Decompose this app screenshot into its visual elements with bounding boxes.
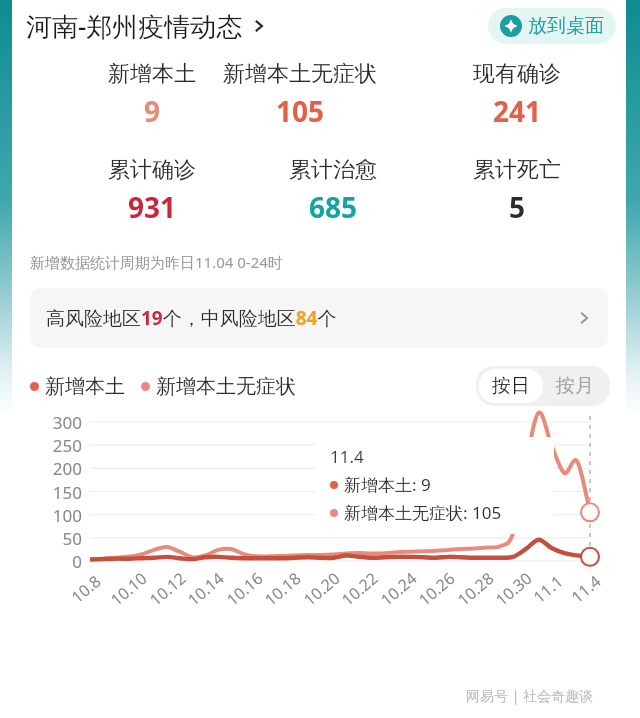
- staticText: 11.1: [529, 570, 567, 608]
- staticText: 10.20: [299, 567, 344, 611]
- staticText: 10.14: [183, 567, 228, 611]
- staticText: 0: [34, 550, 82, 573]
- staticText: 新增本土无症状: 105: [344, 501, 502, 524]
- staticText: 新增数据统计周期为昨日11.04 0-24时: [30, 252, 283, 272]
- staticText: 按日: [492, 374, 530, 398]
- button[interactable]: 新增本土: [108, 60, 196, 130]
- staticText: 10.12: [145, 567, 190, 611]
- button[interactable]: 新增本土: [30, 374, 125, 399]
- staticText: 10.22: [337, 567, 382, 611]
- staticText: 10.30: [491, 567, 536, 611]
- staticText: 931: [128, 188, 177, 226]
- staticText: 11.4: [567, 570, 605, 608]
- button[interactable]: 放到桌面: [488, 8, 616, 44]
- staticText: 105: [276, 92, 325, 130]
- staticText: 按月: [556, 374, 594, 398]
- staticText: 50: [34, 527, 82, 550]
- staticText: 新增本土无症状: [156, 374, 296, 399]
- staticText: 100: [34, 504, 82, 527]
- button[interactable]: 按日: [479, 369, 543, 403]
- staticText: 累计确诊: [108, 156, 196, 184]
- staticText: 网易号 | 社会奇趣谈: [466, 686, 593, 705]
- staticText: 10.18: [260, 567, 305, 611]
- staticText: 新增本土: 9: [344, 473, 431, 496]
- staticText: 高风险地区19个，中风险地区84个: [46, 305, 337, 331]
- staticText: 新增本土: [45, 374, 125, 399]
- staticText: 放到桌面: [528, 14, 604, 38]
- button[interactable]: 累计死亡: [473, 156, 561, 226]
- staticText: 5: [509, 188, 526, 226]
- staticText: 300: [34, 411, 82, 434]
- staticText: 685: [309, 188, 358, 226]
- staticText: 150: [34, 481, 82, 504]
- button[interactable]: 累计确诊: [108, 156, 196, 226]
- staticText: 10.16: [222, 567, 267, 611]
- button[interactable]: 按月: [543, 369, 607, 403]
- staticText: 200: [34, 457, 82, 480]
- button[interactable]: 累计治愈: [289, 156, 377, 226]
- staticText: 241: [493, 92, 542, 130]
- staticText: 累计死亡: [473, 156, 561, 184]
- staticText: 10.28: [453, 567, 498, 611]
- staticText: 10.24: [376, 567, 421, 611]
- staticText: 10.26: [414, 567, 459, 611]
- button[interactable]: 新增本土无症状: [141, 374, 296, 399]
- staticText: 新增本土无症状: [223, 60, 377, 88]
- staticText: 10.10: [106, 567, 151, 611]
- button[interactable]: 现有确诊: [473, 60, 561, 130]
- staticText: 11.4: [330, 445, 364, 468]
- staticText: 10.8: [67, 570, 105, 608]
- staticText: 250: [34, 434, 82, 457]
- staticText: 新增本土: [108, 60, 196, 88]
- button[interactable]: 河南-郑州疫情动态: [26, 4, 267, 48]
- staticText: 累计治愈: [289, 156, 377, 184]
- button[interactable]: 新增本土无症状: [223, 60, 377, 130]
- staticText: 河南-郑州疫情动态: [26, 8, 243, 44]
- button[interactable]: 高风险地区19个，中风险地区84个: [30, 288, 608, 348]
- staticText: 9: [144, 92, 161, 130]
- staticText: 现有确诊: [473, 60, 561, 88]
